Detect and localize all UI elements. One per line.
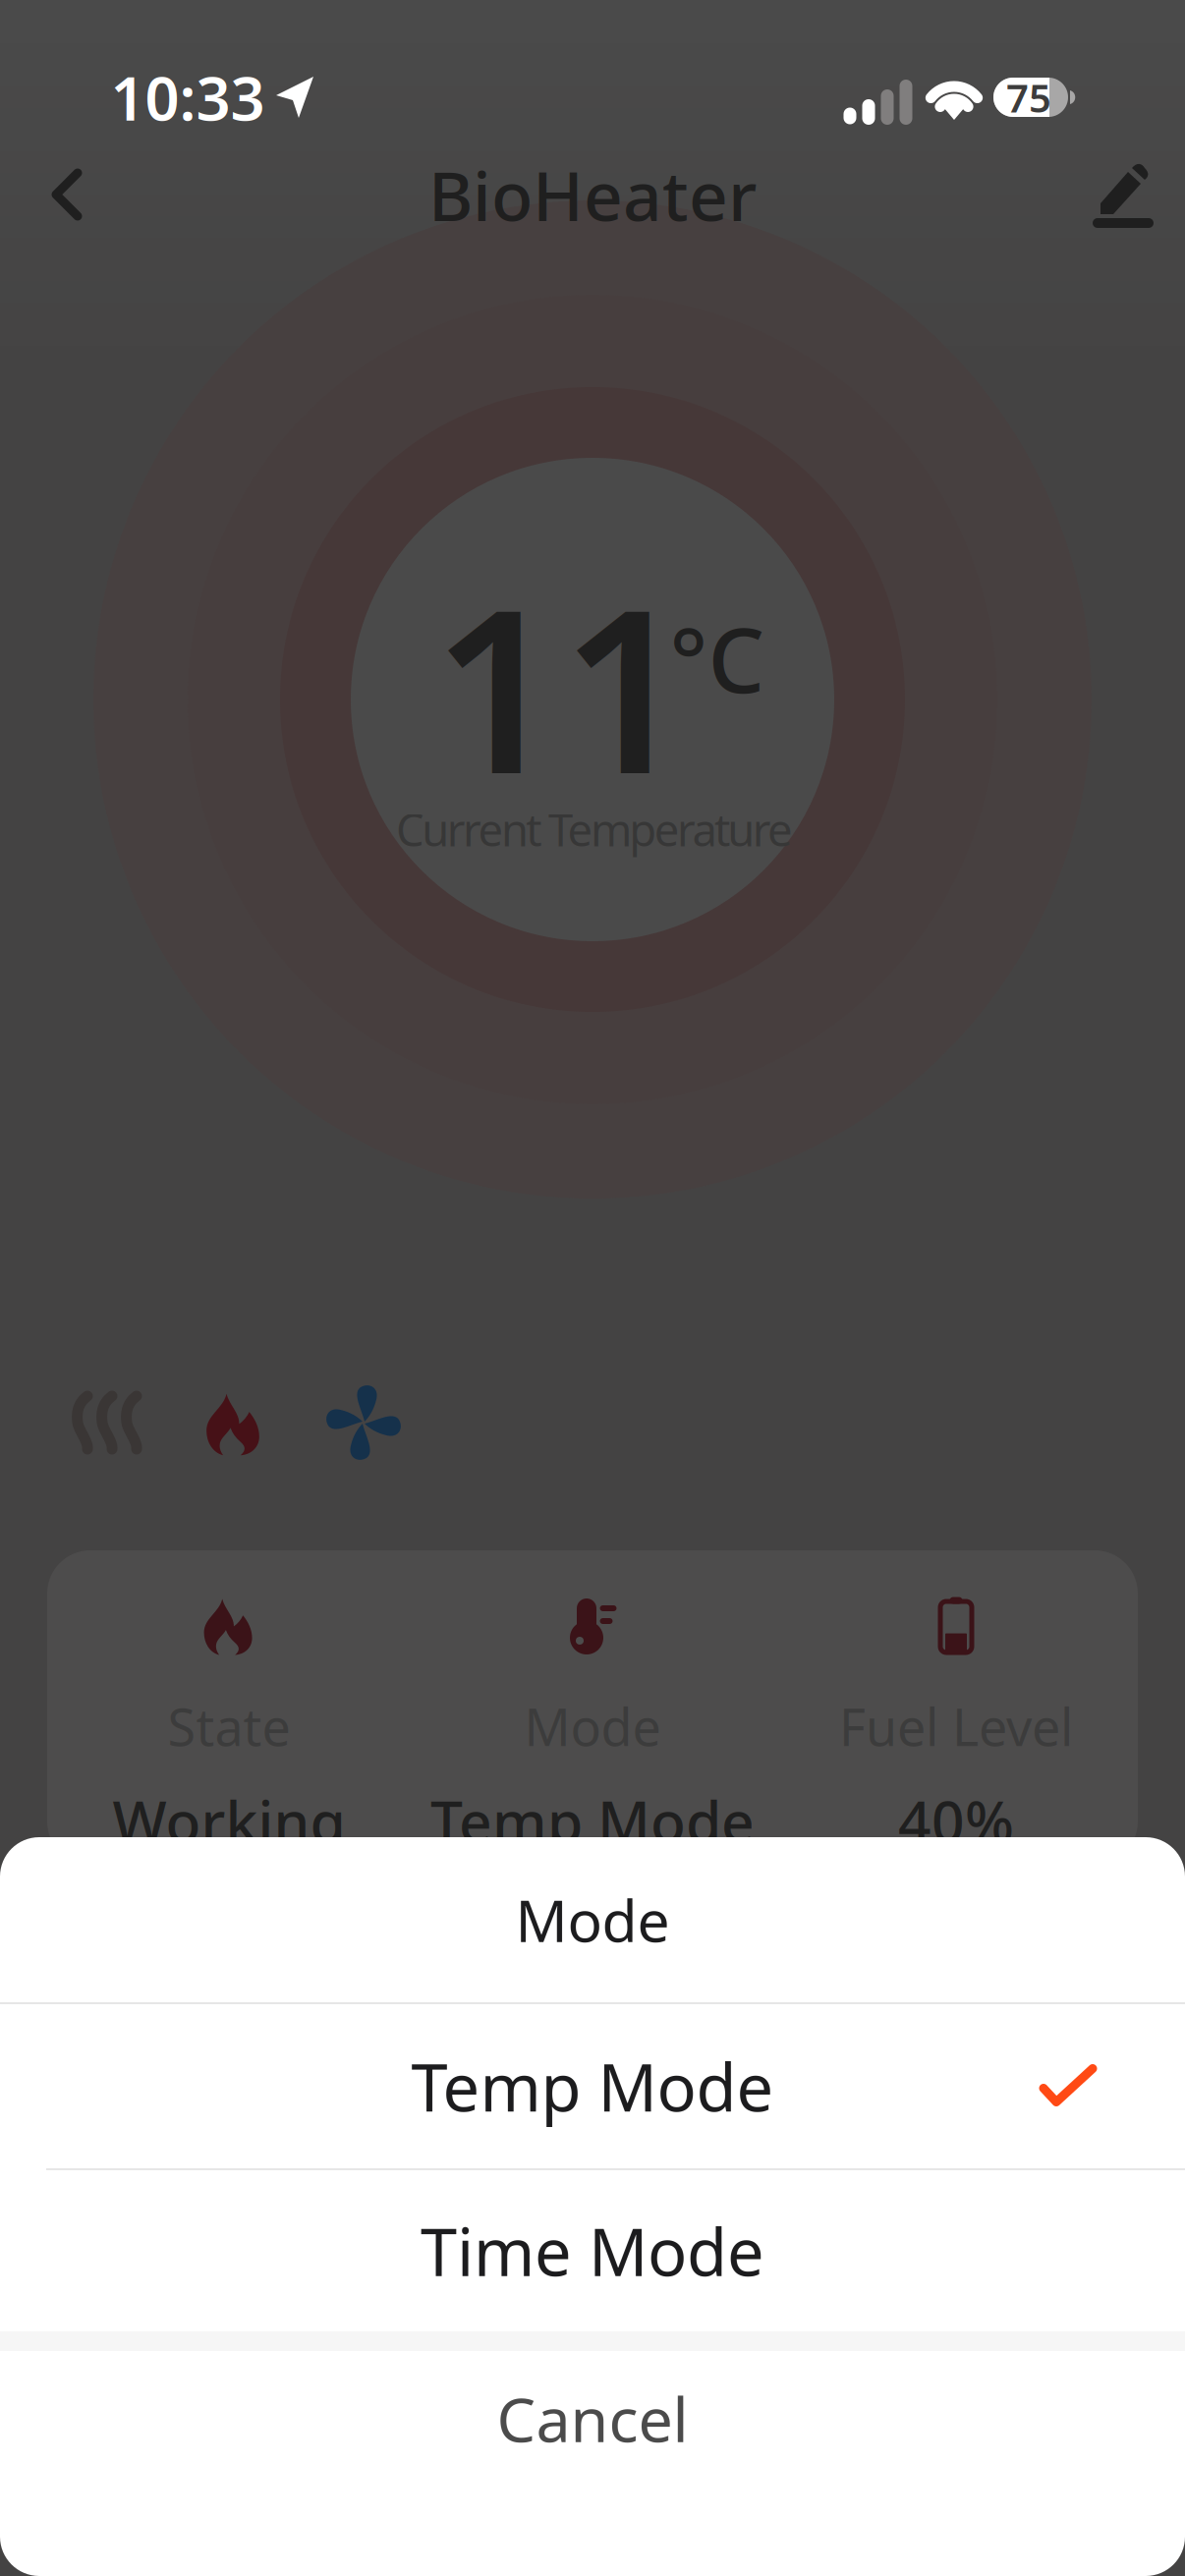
button[interactable]: Back — [13, 140, 121, 249]
staticText: BioHeater — [428, 149, 757, 240]
staticText: 10:33 — [111, 57, 265, 137]
staticText: Working — [113, 1782, 345, 1859]
staticText: State — [168, 1692, 290, 1760]
staticText: Temp Mode — [411, 2043, 774, 2130]
button[interactable]: Edit — [1070, 140, 1178, 249]
staticText: Mode — [524, 1692, 661, 1760]
staticText: Mode — [515, 1881, 670, 1958]
staticText: 11 — [432, 536, 690, 835]
staticText: Temp Mode — [430, 1782, 755, 1859]
staticText: 75 — [1006, 71, 1051, 123]
button[interactable]: Time Mode — [0, 2170, 1185, 2331]
staticText: Fuel Level — [839, 1692, 1073, 1760]
staticText: Current Temperature — [396, 800, 793, 859]
staticText: °C — [670, 599, 765, 717]
staticText: 40% — [898, 1782, 1014, 1859]
button[interactable]: Cancel — [0, 2351, 1185, 2576]
button[interactable]: Temp Mode — [0, 2004, 1185, 2168]
staticText: Time Mode — [421, 2207, 764, 2294]
staticText: Cancel — [497, 2377, 688, 2459]
